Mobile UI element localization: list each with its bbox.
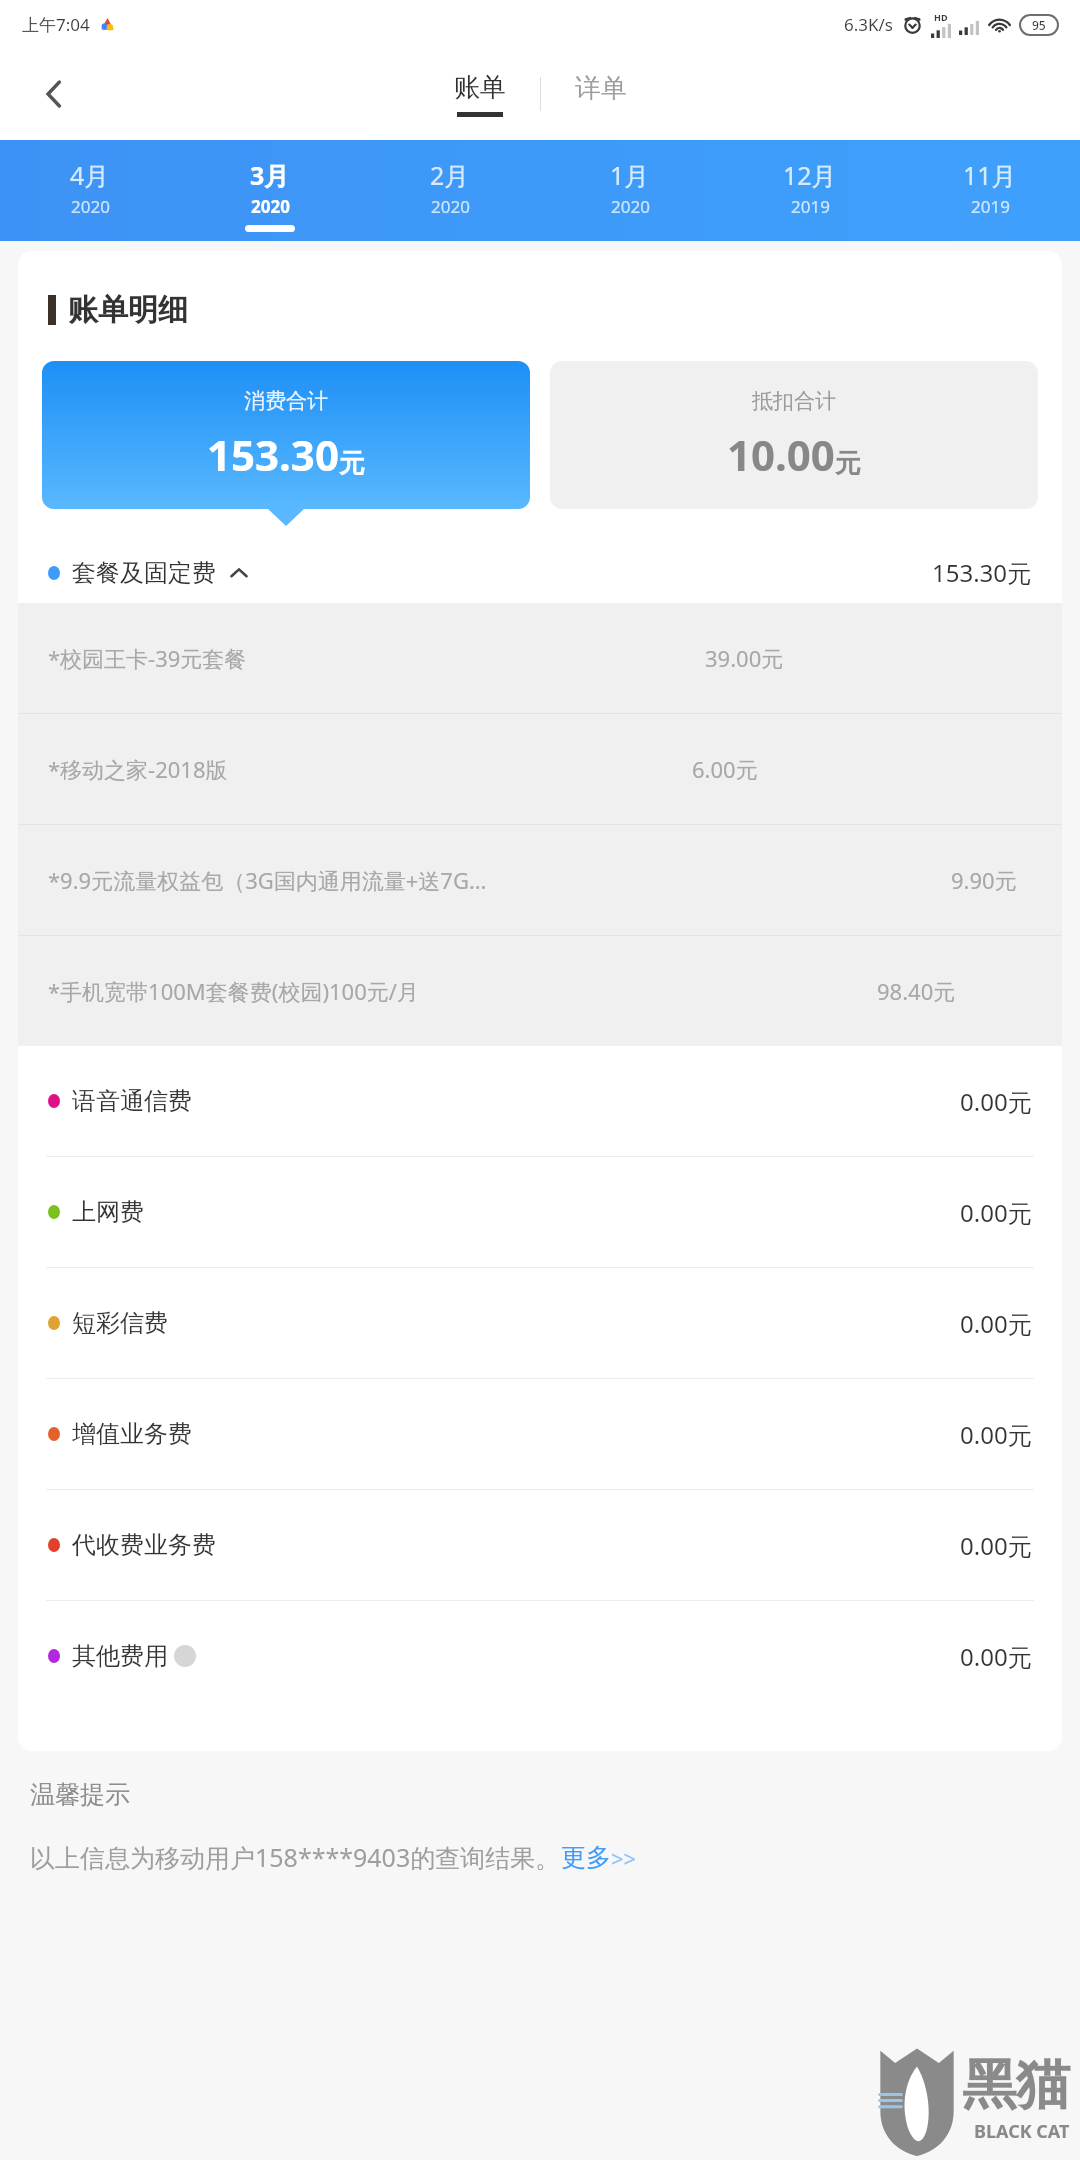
button[interactable]: 4月 <box>0 140 180 241</box>
staticText: HD <box>934 11 948 23</box>
staticText: 2019 <box>791 195 830 218</box>
staticText: 11月 <box>963 158 1017 192</box>
staticText: 2020 <box>611 195 650 218</box>
button[interactable]: 12月 <box>720 140 900 241</box>
staticText: 元 <box>339 447 365 480</box>
staticText: 元 <box>835 447 861 480</box>
staticText: 详单 <box>575 72 627 105</box>
button[interactable]: 其他费用 <box>18 1601 1062 1711</box>
button[interactable]: *9.9元流量权益包（3G国内通用流量+送7G… <box>18 825 1062 935</box>
button[interactable]: 套餐及固定费 <box>18 542 1062 603</box>
button[interactable]: 代收费业务费 <box>18 1490 1062 1600</box>
button[interactable]: *手机宽带100M套餐费(校园)100元/月 <box>18 936 1062 1046</box>
staticText: 套餐及固定费 <box>72 558 216 588</box>
button[interactable]: 更多 <box>561 1842 637 1873</box>
staticText: >> <box>611 1843 637 1873</box>
staticText: 增值业务费 <box>72 1419 192 1449</box>
button[interactable]: 1月 <box>540 140 720 241</box>
staticText: 98.40元 <box>877 976 956 1006</box>
staticText: 3月 <box>250 158 290 192</box>
button[interactable]: 11月 <box>900 140 1080 241</box>
staticText: 账单明细 <box>68 291 188 329</box>
staticText: 黑猫 <box>962 2051 1070 2119</box>
staticText: 短彩信费 <box>72 1308 168 1338</box>
button[interactable]: 账单 <box>446 71 514 117</box>
button[interactable]: 3月 <box>180 140 360 241</box>
staticText: 2020 <box>71 195 110 218</box>
staticText: 6.3K/s <box>844 13 893 36</box>
staticText: BLACK CAT <box>974 2119 1070 2144</box>
staticText: 0.00元 <box>960 1307 1032 1340</box>
staticText: 0.00元 <box>960 1529 1032 1562</box>
staticText: 0.00元 <box>960 1196 1032 1229</box>
staticText: 0.00元 <box>960 1418 1032 1451</box>
button[interactable]: *校园王卡-39元套餐 <box>18 603 1062 713</box>
staticText: *校园王卡-39元套餐 <box>48 643 247 673</box>
staticText: 2020 <box>431 195 470 218</box>
staticText: 1月 <box>610 158 650 192</box>
staticText: 10.00 <box>727 426 835 483</box>
button[interactable]: 详单 <box>567 78 635 111</box>
staticText: 账单 <box>454 71 506 104</box>
staticText: 12月 <box>783 158 837 192</box>
staticText: 153.30元 <box>932 556 1032 589</box>
staticText: 4月 <box>70 158 110 192</box>
staticText: *移动之家-2018版 <box>48 754 228 784</box>
button[interactable]: 语音通信费 <box>18 1046 1062 1156</box>
staticText: 2019 <box>971 195 1010 218</box>
staticText: 代收费业务费 <box>72 1530 216 1560</box>
staticText: 2020 <box>251 195 290 218</box>
button[interactable]: 消费合计 <box>42 361 530 509</box>
button[interactable]: 2月 <box>360 140 540 241</box>
staticText: 153.30 <box>207 426 339 483</box>
staticText: 0.00元 <box>960 1640 1032 1673</box>
staticText: 其他费用 <box>72 1641 168 1671</box>
staticText: 6.00元 <box>692 754 758 784</box>
button[interactable]: 短彩信费 <box>18 1268 1062 1378</box>
button[interactable]: 上网费 <box>18 1157 1062 1267</box>
staticText: 2月 <box>430 158 470 192</box>
staticText: 95 <box>1032 17 1046 33</box>
button[interactable]: 返回 <box>18 58 90 130</box>
staticText: *手机宽带100M套餐费(校园)100元/月 <box>48 976 419 1006</box>
button[interactable]: *移动之家-2018版 <box>18 714 1062 824</box>
button[interactable]: 增值业务费 <box>18 1379 1062 1489</box>
staticText: 消费合计 <box>244 388 328 414</box>
staticText: 温馨提示 <box>30 1779 130 1810</box>
staticText: 抵扣合计 <box>752 388 836 414</box>
staticText: 0.00元 <box>960 1085 1032 1118</box>
staticText: 更多 <box>561 1842 611 1873</box>
staticText: 语音通信费 <box>72 1086 192 1116</box>
staticText: 上网费 <box>72 1197 144 1227</box>
staticText: 上午7:04 <box>22 13 90 36</box>
staticText: 39.00元 <box>705 643 784 673</box>
button[interactable]: 抵扣合计 <box>550 361 1038 509</box>
staticText: 9.90元 <box>951 865 1017 895</box>
staticText: 以上信息为移动用户158****9403的查询结果。 <box>30 1840 561 1874</box>
staticText: *9.9元流量权益包（3G国内通用流量+送7G… <box>48 865 487 895</box>
